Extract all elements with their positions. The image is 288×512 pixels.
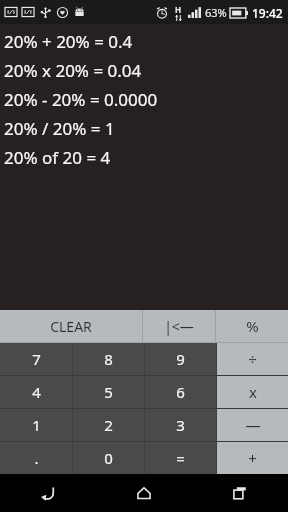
button[interactable]: . <box>0 442 72 474</box>
button[interactable]: 5 <box>73 376 144 408</box>
staticText: CLEAR <box>50 317 92 336</box>
staticText: 63% <box>205 5 227 20</box>
staticText: 20% - 20% = 0.0000 <box>4 88 158 111</box>
button[interactable]: ÷ <box>217 343 288 375</box>
staticText: 7 <box>32 349 41 369</box>
staticText: 9 <box>176 349 185 369</box>
staticText: 0 <box>104 448 113 468</box>
staticText: 4 <box>32 382 41 402</box>
staticText: + <box>248 448 257 468</box>
staticText: 20% / 20% = 1 <box>4 117 115 140</box>
staticText: 19:42 <box>252 5 283 21</box>
staticText: 6 <box>176 382 185 402</box>
button[interactable]: 9 <box>145 343 216 375</box>
button[interactable]: 3 <box>145 409 216 441</box>
staticText: 8 <box>104 349 113 369</box>
staticText: % <box>246 316 259 336</box>
staticText: . <box>34 448 39 468</box>
staticText: 3 <box>176 415 185 435</box>
button[interactable]: x <box>217 376 288 408</box>
button[interactable]: % <box>216 310 288 342</box>
button[interactable]: Back <box>0 474 96 512</box>
button[interactable]: + <box>217 442 288 474</box>
button[interactable]: 4 <box>0 376 72 408</box>
button[interactable]: 8 <box>73 343 144 375</box>
button[interactable]: CLEAR <box>0 310 142 342</box>
staticText: ÷ <box>248 349 257 369</box>
button[interactable]: Recent apps <box>192 474 288 512</box>
button[interactable]: |<— <box>143 310 215 342</box>
button[interactable]: 1 <box>0 409 72 441</box>
button[interactable]: 0 <box>73 442 144 474</box>
button[interactable]: 7 <box>0 343 72 375</box>
staticText: 20% of 20 = 4 <box>4 146 111 169</box>
button[interactable]: 2 <box>73 409 144 441</box>
button[interactable]: 6 <box>145 376 216 408</box>
staticText: — <box>245 415 261 435</box>
button[interactable]: — <box>217 409 288 441</box>
staticText: 20% + 20% = 0.4 <box>4 30 133 53</box>
staticText: 20% x 20% = 0.04 <box>4 59 142 82</box>
staticText: 2 <box>104 415 113 435</box>
staticText: x <box>249 382 257 402</box>
staticText: = <box>176 448 185 468</box>
staticText: H <box>175 4 182 15</box>
button[interactable]: = <box>145 442 216 474</box>
staticText: 1 <box>32 415 41 435</box>
button[interactable]: Home <box>96 474 192 512</box>
staticText: 5 <box>104 382 113 402</box>
staticText: |<— <box>164 317 194 336</box>
